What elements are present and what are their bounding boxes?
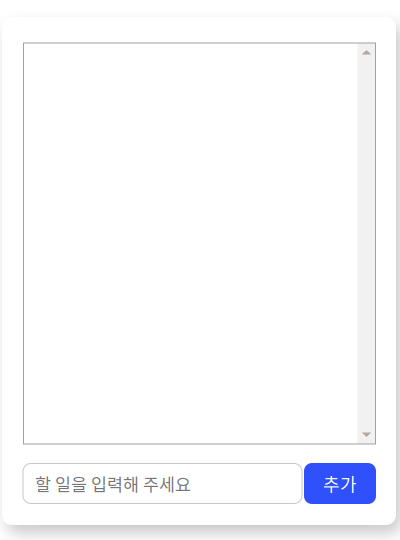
staticText: 할 일을 입력해 주세요	[35, 471, 191, 496]
button[interactable]: 할 일을 입력해 주세요	[23, 463, 302, 503]
button[interactable]: 추가	[304, 463, 376, 504]
button[interactable]: Scroll up	[358, 43, 375, 54]
staticText: 추가	[323, 470, 357, 497]
button[interactable]: Scroll down	[358, 432, 375, 444]
